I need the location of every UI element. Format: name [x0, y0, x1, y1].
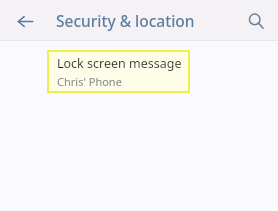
- button[interactable]: Lock screen message: [47, 50, 190, 93]
- staticText: Lock screen message: [57, 55, 182, 72]
- staticText: Chris' Phone: [57, 74, 122, 89]
- staticText: Security & location: [56, 10, 195, 31]
- button[interactable]: Back: [11, 7, 39, 35]
- button[interactable]: Search: [242, 7, 270, 35]
